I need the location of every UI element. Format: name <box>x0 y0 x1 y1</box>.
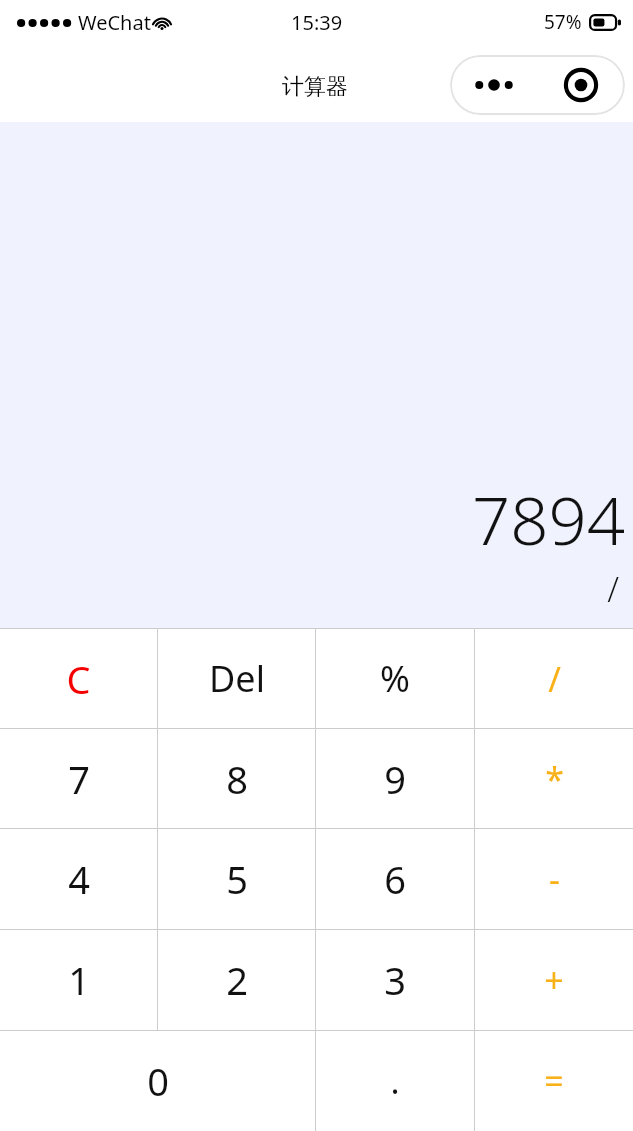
button[interactable]: . <box>316 1031 474 1131</box>
staticText: + <box>544 957 564 1003</box>
staticText: 5 <box>226 853 248 905</box>
staticText: 8 <box>226 753 248 805</box>
staticText: 15:39 <box>291 9 343 36</box>
button[interactable]: 2 <box>158 930 315 1030</box>
staticText: = <box>544 1058 564 1104</box>
staticText: 7894 <box>471 473 625 564</box>
button[interactable]: 0 <box>0 1031 315 1131</box>
staticText: . <box>390 1058 400 1104</box>
staticText: / <box>548 656 561 702</box>
button[interactable]: More <box>450 55 537 115</box>
staticText: 7 <box>68 753 90 805</box>
button[interactable]: 3 <box>316 930 474 1030</box>
button[interactable]: 4 <box>0 829 157 929</box>
button[interactable]: Del <box>158 629 315 728</box>
button[interactable]: 7 <box>0 729 157 828</box>
button[interactable]: % <box>316 629 474 728</box>
button[interactable]: Close <box>537 55 625 115</box>
button[interactable]: C <box>0 629 157 728</box>
staticText: 6 <box>384 853 406 905</box>
staticText: - <box>549 856 560 902</box>
button[interactable]: - <box>475 829 633 929</box>
staticText: C <box>66 653 91 705</box>
button[interactable]: / <box>475 629 633 728</box>
button[interactable]: 5 <box>158 829 315 929</box>
button[interactable]: * <box>475 729 633 828</box>
staticText: 3 <box>384 954 406 1006</box>
staticText: 9 <box>384 753 406 805</box>
button[interactable]: 1 <box>0 930 157 1030</box>
staticText: 1 <box>68 954 90 1006</box>
staticText: / <box>607 566 619 612</box>
staticText: 0 <box>147 1055 169 1107</box>
staticText: WeChat <box>78 9 151 36</box>
button[interactable]: + <box>475 930 633 1030</box>
staticText: * <box>545 756 564 802</box>
staticText: Del <box>209 654 265 703</box>
staticText: 2 <box>226 954 248 1006</box>
staticText: 计算器 <box>282 73 348 101</box>
staticText: % <box>380 654 410 703</box>
button[interactable]: 8 <box>158 729 315 828</box>
button[interactable]: 9 <box>316 729 474 828</box>
staticText: 57% <box>544 9 582 35</box>
button[interactable]: = <box>475 1031 633 1131</box>
button[interactable]: 6 <box>316 829 474 929</box>
staticText: 4 <box>68 853 90 905</box>
